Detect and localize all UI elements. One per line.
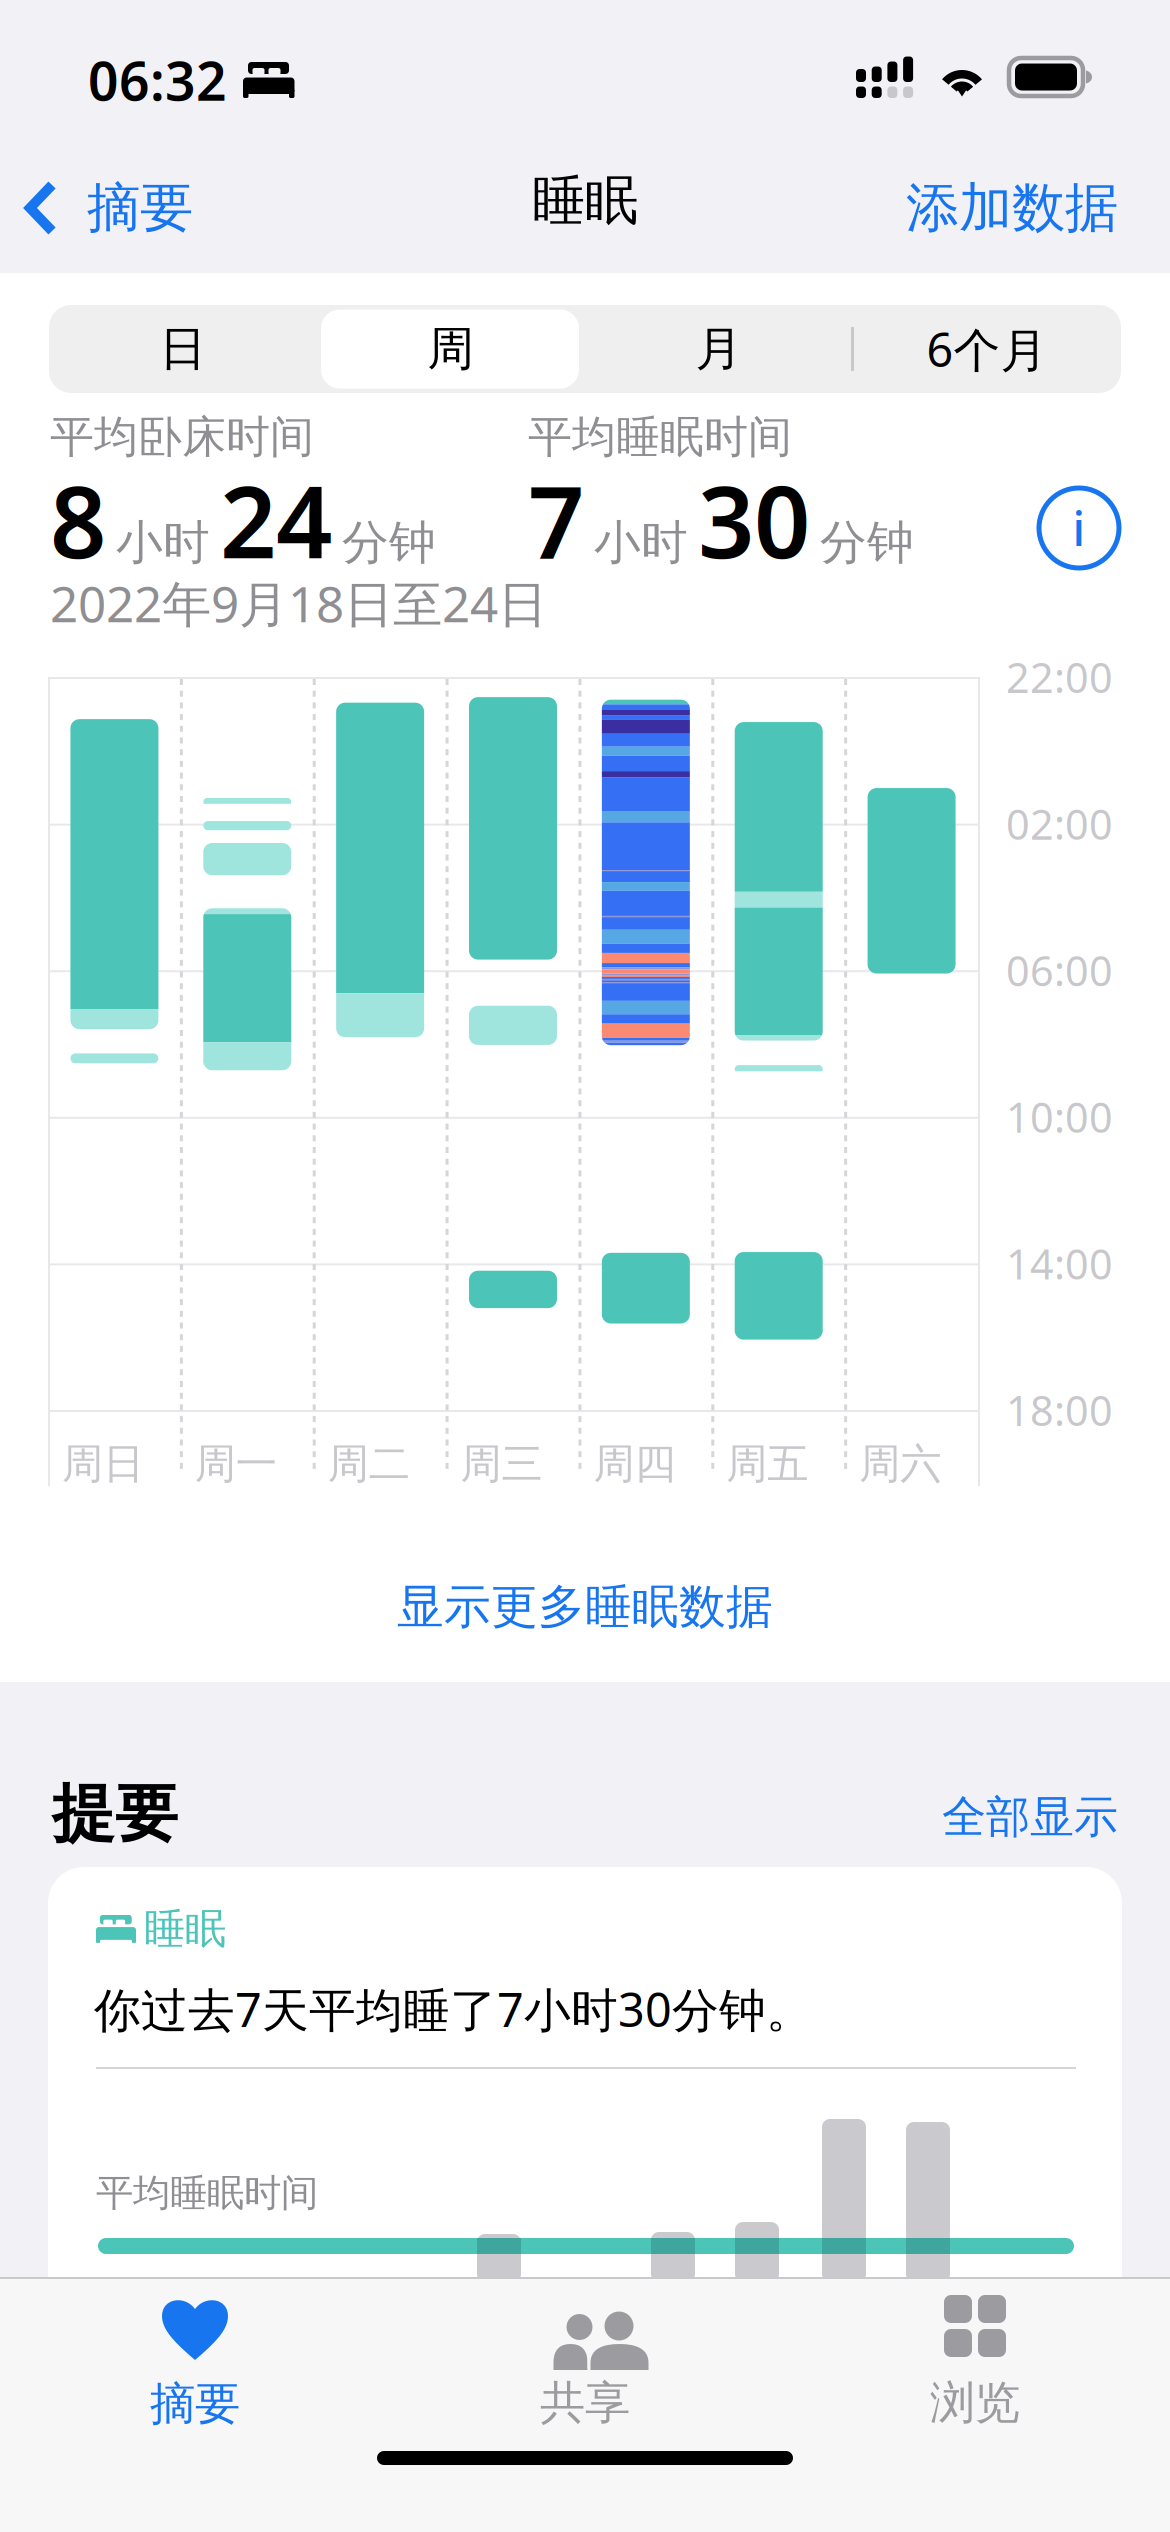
staticText: 周四 — [593, 1439, 675, 1489]
staticText: 平均睡眠时间 — [96, 2170, 318, 2216]
staticText: 周一 — [195, 1439, 277, 1489]
staticText: 共享 — [540, 2375, 630, 2431]
staticText: 06:32 — [88, 45, 227, 115]
staticText: 06:00 — [1006, 943, 1113, 998]
staticText: 2022年9月18日至24日 — [50, 570, 547, 636]
staticText: 周 — [427, 320, 474, 378]
button[interactable]: 共享 — [390, 2295, 780, 2455]
staticText: 18:00 — [1006, 1383, 1113, 1437]
staticText: 6个月 — [926, 318, 1047, 380]
staticText: 周五 — [726, 1439, 808, 1489]
staticText: 分钟 — [820, 514, 914, 571]
staticText: 月 — [695, 320, 742, 378]
staticText: 摘要 — [150, 2376, 240, 2432]
button[interactable]: 月 — [585, 305, 853, 393]
staticText: i — [1072, 497, 1085, 559]
staticText: 周三 — [461, 1439, 543, 1489]
staticText: 8 — [50, 454, 106, 585]
button[interactable]: 添加数据 — [906, 160, 1170, 256]
button[interactable]: 关于 — [1036, 485, 1122, 571]
staticText: 全部显示 — [942, 1790, 1118, 1844]
staticText: 7 — [528, 454, 584, 585]
staticText: 浏览 — [930, 2375, 1020, 2431]
staticText: 14:00 — [1006, 1236, 1113, 1291]
staticText: 日 — [159, 320, 206, 378]
staticText: 小时 — [594, 514, 688, 571]
staticText: 22:00 — [1006, 650, 1113, 704]
staticText: 你过去7天平均睡了7小时30分钟。 — [94, 1978, 813, 2040]
button[interactable]: 浏览 — [780, 2295, 1170, 2455]
staticText: 小时 — [116, 514, 210, 571]
button[interactable]: 全部显示 — [942, 1782, 1118, 1852]
staticText: 平均卧床时间 — [50, 410, 314, 464]
staticText: 30 — [698, 454, 810, 585]
button[interactable]: 摘要 — [0, 2295, 390, 2455]
staticText: 分钟 — [342, 514, 436, 571]
button[interactable]: 摘要 — [0, 160, 240, 256]
button[interactable]: 日 — [49, 305, 317, 393]
staticText: 10:00 — [1006, 1089, 1113, 1144]
staticText: 周日 — [62, 1439, 144, 1489]
staticText: 周六 — [859, 1439, 941, 1489]
button[interactable]: 周 — [317, 305, 585, 393]
staticText: 显示更多睡眠数据 — [397, 1578, 773, 1636]
staticText: 周二 — [328, 1439, 410, 1489]
button[interactable]: 6个月 — [853, 305, 1121, 393]
staticText: 24 — [220, 454, 332, 585]
staticText: 添加数据 — [906, 175, 1118, 241]
staticText: 摘要 — [87, 175, 193, 241]
staticText: 02:00 — [1006, 796, 1113, 851]
staticText: 平均睡眠时间 — [528, 410, 792, 464]
button[interactable]: 显示更多睡眠数据 — [50, 1562, 1120, 1652]
staticText: 睡眠 — [144, 1904, 226, 1954]
staticText: 睡眠 — [532, 168, 638, 233]
staticText: 提要 — [52, 1775, 178, 1852]
